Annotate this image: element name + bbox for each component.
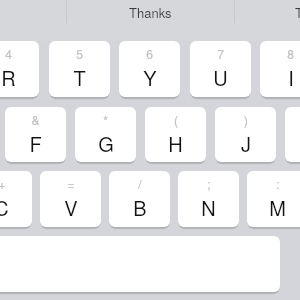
staticText: C xyxy=(0,193,9,222)
staticText: * xyxy=(103,111,108,128)
button[interactable]: C xyxy=(0,171,32,227)
button[interactable]: K xyxy=(285,107,300,162)
staticText: 7 xyxy=(217,45,224,62)
staticText: F xyxy=(29,129,42,158)
staticText: H xyxy=(168,129,183,158)
staticText: ; xyxy=(207,175,211,192)
button[interactable]: B xyxy=(109,171,170,227)
staticText: G xyxy=(98,129,114,158)
button[interactable]: Thanks xyxy=(235,0,300,25)
staticText: 5 xyxy=(76,45,83,62)
button[interactable]: V xyxy=(40,171,101,227)
button[interactable]: M xyxy=(247,171,300,227)
button[interactable]: T xyxy=(49,41,110,97)
staticText: B xyxy=(133,193,147,222)
staticText: ( xyxy=(174,111,178,128)
staticText: / xyxy=(138,175,142,192)
staticText: Thanks xyxy=(129,3,172,22)
staticText: M xyxy=(269,193,286,222)
staticText: + xyxy=(0,175,6,192)
staticText: T xyxy=(73,63,86,92)
button[interactable]: F xyxy=(5,107,66,162)
staticText: I xyxy=(288,63,294,92)
staticText: J xyxy=(241,129,251,158)
button[interactable]: N xyxy=(178,171,239,227)
staticText: V xyxy=(64,193,78,222)
button[interactable]: H xyxy=(145,107,206,162)
staticText: : xyxy=(276,175,280,192)
staticText: N xyxy=(201,193,216,222)
staticText: = xyxy=(67,175,75,192)
staticText: 8 xyxy=(287,45,294,62)
staticText: & xyxy=(31,111,40,128)
staticText: 6 xyxy=(146,45,153,62)
staticText: 4 xyxy=(5,45,12,62)
staticText: R xyxy=(1,63,16,92)
button[interactable]: G xyxy=(75,107,136,162)
staticText: U xyxy=(213,63,228,92)
button[interactable]: J xyxy=(215,107,276,162)
button[interactable]: Thanks xyxy=(67,0,234,25)
staticText: Y xyxy=(143,63,157,92)
button[interactable]: Y xyxy=(119,41,180,97)
button[interactable]: I xyxy=(260,41,300,97)
button[interactable]: R xyxy=(0,41,39,97)
button[interactable]: U xyxy=(190,41,251,97)
staticText: Thanks xyxy=(295,3,300,22)
staticText: ) xyxy=(244,111,248,128)
